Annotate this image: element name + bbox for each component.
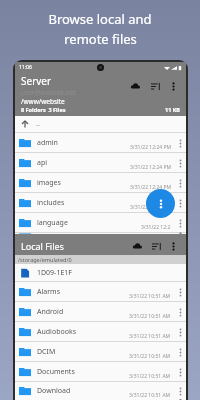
staticText: 3/31/22 10:51 AM: [129, 353, 171, 360]
button[interactable]: Alarms: [15, 282, 186, 301]
staticText: 11:06: [19, 64, 32, 71]
staticText: /www/website: [21, 97, 65, 106]
button[interactable]: More options: [166, 239, 181, 254]
other: Up: [20, 119, 30, 129]
button[interactable]: More options: [174, 157, 186, 169]
button[interactable]: license: [15, 233, 186, 234]
button[interactable]: DCIM: [15, 342, 186, 361]
staticText: 3/31/22 10:51 AM: [129, 313, 171, 320]
button[interactable]: Documents: [15, 362, 186, 381]
staticText: 3/31/22 12:24 PM: [130, 164, 171, 171]
staticText: includes: [37, 198, 65, 208]
button[interactable]: More options: [174, 137, 186, 149]
staticText: 3/31/22 12:24 PM: [130, 144, 171, 151]
button[interactable]: language: [15, 213, 186, 232]
staticText: images: [37, 178, 61, 188]
staticText: Alarms: [37, 287, 60, 297]
button[interactable]: Sort: [147, 78, 163, 94]
button[interactable]: More options: [165, 78, 181, 94]
staticText: Android: [37, 307, 64, 317]
button[interactable]: More options: [174, 217, 186, 229]
staticText: 3/31/22 12:23 PM: [130, 204, 171, 211]
button[interactable]: Download: [15, 382, 186, 400]
button[interactable]: admin: [15, 133, 186, 152]
staticText: 3/31/22 10:51 AM: [129, 373, 171, 380]
button[interactable]: Up: [15, 116, 186, 132]
button[interactable]: More options: [174, 385, 186, 397]
staticText: Documents: [37, 367, 75, 377]
button[interactable]: Android: [15, 302, 186, 321]
button[interactable]: images: [15, 173, 186, 192]
staticText: 3/31/22 10:51 AM: [129, 333, 171, 340]
staticText: Download: [37, 386, 71, 396]
staticText: 3/31/22 10:51 AM: [129, 293, 171, 300]
button[interactable]: Audiobooks: [15, 322, 186, 341]
staticText: 3/31/22 12:24 PM: [130, 184, 171, 191]
staticText: 11 KB: [165, 106, 181, 113]
staticText: 3/31/22 10:51 AM: [129, 392, 171, 399]
button[interactable]: 1D09-1E1F: [15, 264, 186, 281]
button[interactable]: More options: [174, 366, 186, 378]
staticText: ..: [36, 119, 40, 129]
button[interactable]: Upload: [130, 239, 145, 254]
staticText: language: [37, 218, 68, 228]
staticText: /storage/emulated/0: [18, 256, 72, 263]
staticText: Audiobooks: [37, 327, 77, 337]
button[interactable]: More options: [174, 326, 186, 338]
staticText: 3/31/22 12:2: [141, 224, 171, 231]
staticText: 1D09-1E1F: [37, 268, 72, 278]
button[interactable]: Upload: [127, 78, 143, 94]
button[interactable]: Sort: [149, 239, 164, 254]
button[interactable]: includes: [15, 193, 186, 212]
staticText: DCIM: [37, 347, 56, 357]
staticText: Browse local and: [48, 10, 152, 28]
staticText: admin: [37, 138, 58, 148]
staticText: Local Files: [21, 240, 64, 252]
button[interactable]: More options: [174, 177, 186, 189]
button[interactable]: More actions: [146, 189, 175, 218]
staticText: Server: [21, 74, 52, 88]
button[interactable]: More options: [174, 346, 186, 358]
button[interactable]: More options: [174, 197, 186, 209]
button[interactable]: More options: [174, 306, 186, 318]
button[interactable]: api: [15, 153, 186, 172]
staticText: user@website.net: [21, 88, 76, 97]
staticText: remote files: [64, 30, 137, 48]
staticText: 8 Folders 3 Files: [21, 106, 66, 113]
staticText: api: [37, 158, 48, 168]
button[interactable]: More options: [174, 286, 186, 298]
button[interactable]: More options: [174, 233, 186, 234]
